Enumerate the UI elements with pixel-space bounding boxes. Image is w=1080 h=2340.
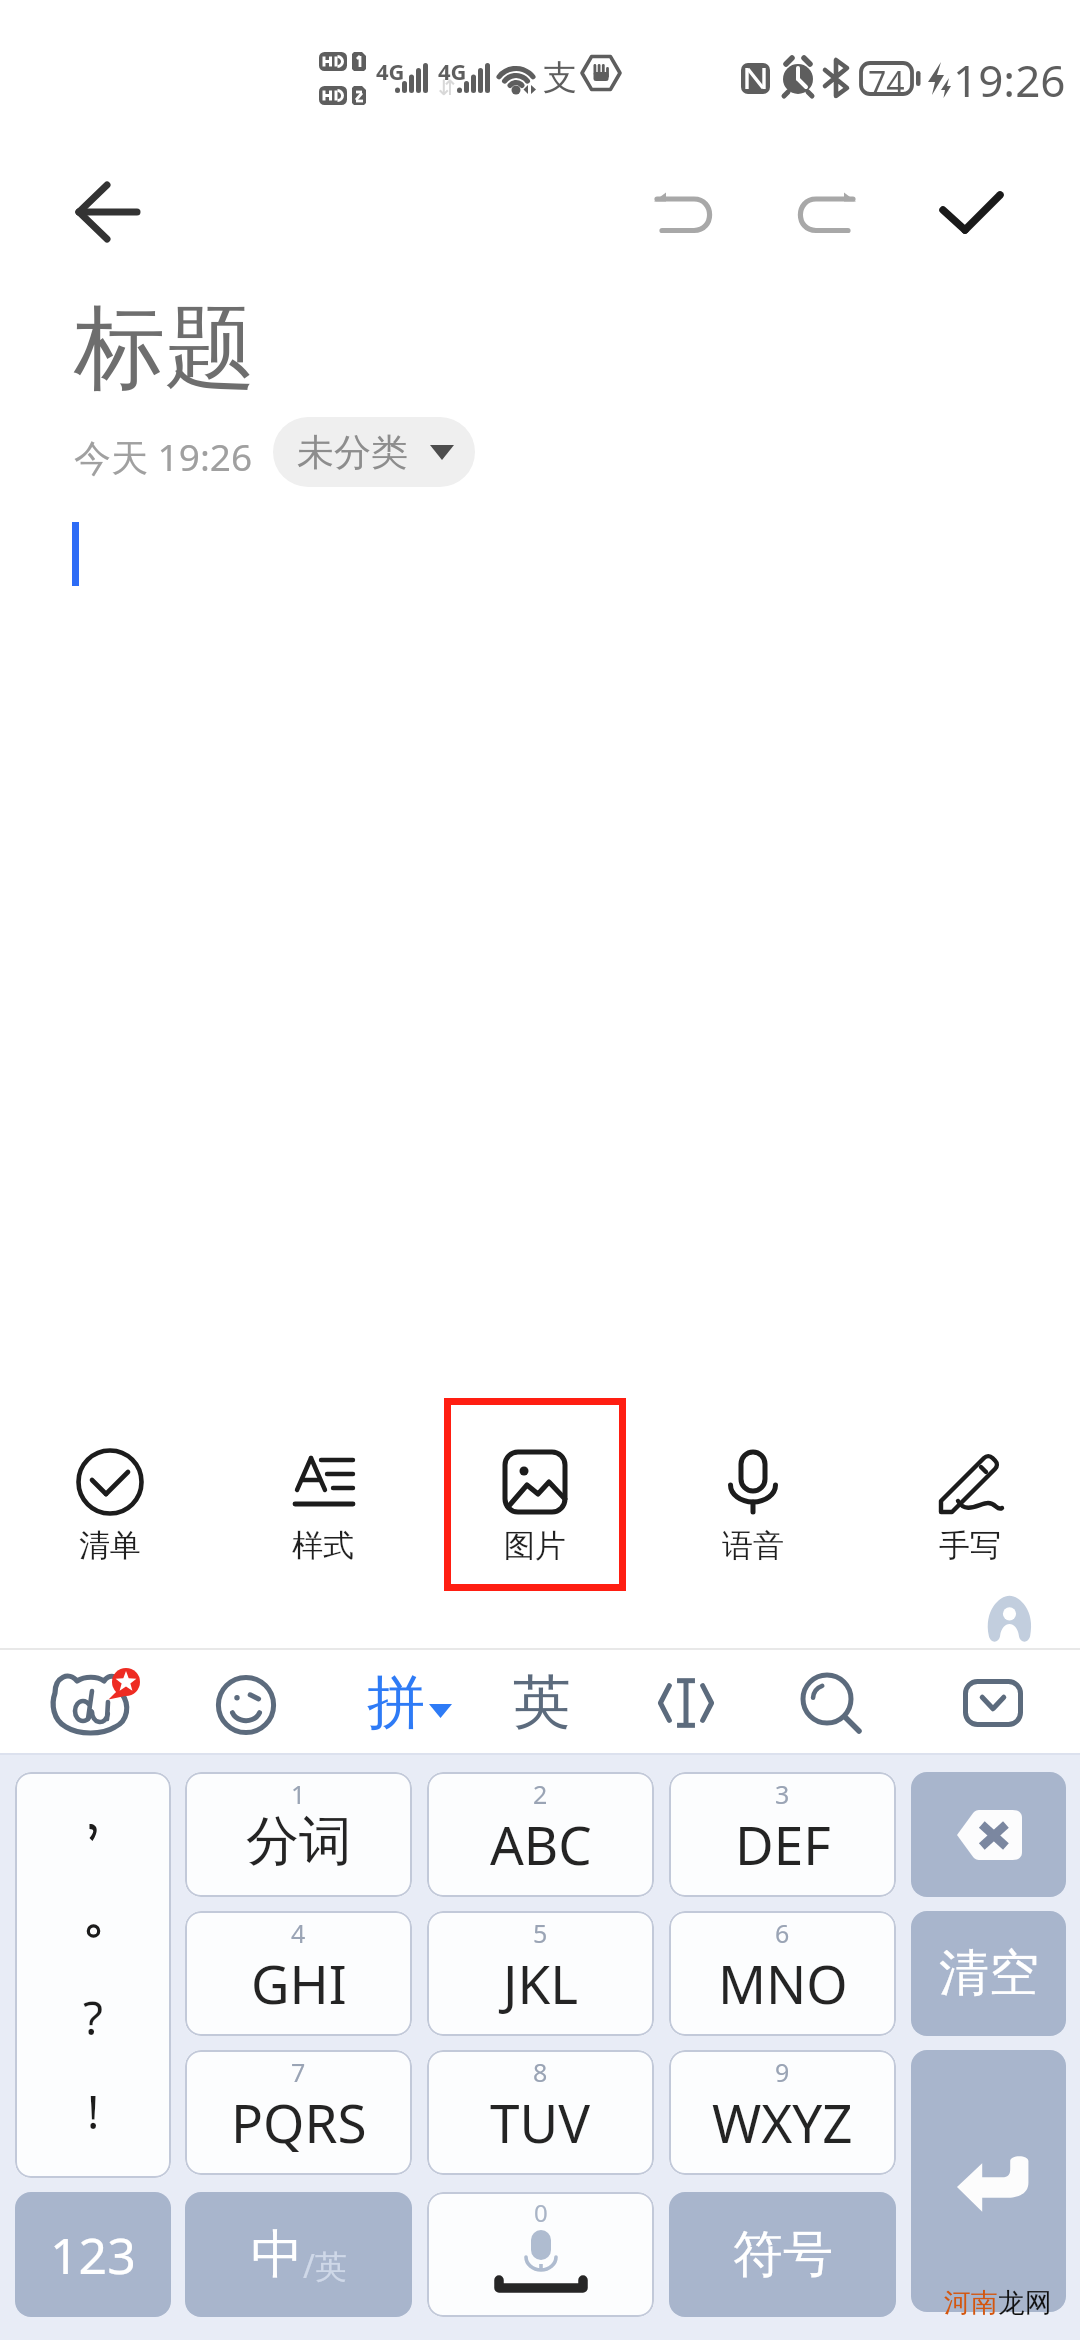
staticText: 拼 bbox=[367, 1666, 425, 1739]
staticText: 4G bbox=[438, 56, 467, 86]
button[interactable]: 2 bbox=[427, 1772, 654, 1897]
button[interactable]: 拼 bbox=[367, 1662, 452, 1742]
button[interactable]: Hide keyboard bbox=[963, 1679, 1023, 1727]
staticText: 清单 bbox=[79, 1526, 141, 1565]
button[interactable]: 6 bbox=[669, 1911, 896, 2036]
button[interactable]: Back bbox=[48, 157, 168, 267]
button[interactable]: 4 bbox=[185, 1911, 412, 2036]
button[interactable]: 7 bbox=[185, 2050, 412, 2175]
staticText: 分词 bbox=[246, 1808, 352, 1875]
button[interactable]: 中 bbox=[185, 2192, 412, 2317]
button[interactable]: 5 bbox=[427, 1911, 654, 2036]
button[interactable]: 样式 bbox=[232, 1398, 414, 1591]
staticText: 龙网 bbox=[998, 2286, 1052, 2320]
button[interactable]: 9 bbox=[669, 2050, 896, 2175]
staticText: 英 bbox=[513, 1666, 571, 1739]
staticText: ? bbox=[83, 1986, 103, 2049]
button[interactable]: Done bbox=[916, 157, 1026, 267]
button[interactable]: 符号 bbox=[669, 2192, 896, 2317]
staticText: 语音 bbox=[722, 1526, 784, 1565]
button[interactable]: 手写 bbox=[879, 1398, 1061, 1591]
button[interactable]: Assistant bbox=[986, 1598, 1033, 1642]
button[interactable]: 图片 bbox=[444, 1398, 626, 1591]
staticText: 样式 bbox=[292, 1526, 354, 1565]
staticText: 4G bbox=[376, 56, 405, 86]
staticText: 未分类 bbox=[297, 429, 408, 476]
staticText: 清空 bbox=[939, 1942, 1039, 2005]
staticText: 河南 bbox=[944, 2286, 998, 2320]
button[interactable]: Space bbox=[427, 2192, 654, 2317]
staticText: 符号 bbox=[733, 2223, 833, 2286]
staticText: 8 bbox=[533, 2055, 548, 2089]
staticText: 标题 bbox=[74, 291, 256, 406]
button[interactable]: 123 bbox=[15, 2192, 171, 2317]
staticText: 今天 19:26 bbox=[74, 431, 253, 482]
staticText: 支 bbox=[543, 56, 577, 99]
staticText: ⇵ bbox=[438, 76, 456, 100]
staticText: 3 bbox=[775, 1777, 790, 1811]
staticText: ABC bbox=[490, 1808, 592, 1880]
button[interactable]: 清单 bbox=[19, 1398, 201, 1591]
staticText: 6 bbox=[775, 1916, 790, 1950]
staticText: 123 bbox=[50, 2221, 136, 2289]
button[interactable]: Redo bbox=[764, 157, 874, 267]
button[interactable]: 英 bbox=[513, 1662, 571, 1742]
button[interactable]: 1 bbox=[185, 1772, 412, 1897]
button[interactable]: Undo bbox=[636, 157, 746, 267]
staticText: 0 bbox=[534, 2196, 548, 2229]
button[interactable]: 未分类 bbox=[273, 417, 475, 487]
staticText: 图片 bbox=[504, 1526, 566, 1565]
staticText: 7 bbox=[291, 2055, 306, 2089]
button[interactable]: 8 bbox=[427, 2050, 654, 2175]
staticText: JKL bbox=[503, 1947, 579, 2019]
button[interactable]: Backspace bbox=[911, 1772, 1066, 1897]
staticText: 中 bbox=[251, 2222, 303, 2288]
staticText: 2 bbox=[533, 1777, 548, 1811]
staticText: 74 bbox=[868, 61, 905, 105]
staticText: PQRS bbox=[231, 2086, 367, 2158]
button[interactable]: Baidu input bbox=[52, 1669, 144, 1739]
staticText: MNO bbox=[718, 1947, 848, 2019]
button[interactable]: Move cursor bbox=[654, 1672, 718, 1734]
staticText: GHI bbox=[251, 1947, 347, 2019]
staticText: 19:26 bbox=[953, 50, 1066, 110]
button[interactable]: Enter bbox=[911, 2050, 1066, 2312]
staticText: WXYZ bbox=[712, 2086, 853, 2158]
button[interactable]: Emoji bbox=[216, 1675, 276, 1735]
button[interactable]: 3 bbox=[669, 1772, 896, 1897]
staticText: 手写 bbox=[939, 1526, 1001, 1565]
button[interactable]: Search bbox=[802, 1673, 862, 1733]
staticText: /英 bbox=[303, 2244, 347, 2288]
button[interactable]: 语音 bbox=[662, 1398, 844, 1591]
staticText: 1 bbox=[291, 1777, 306, 1811]
staticText: 4 bbox=[291, 1916, 306, 1950]
staticText: 5 bbox=[533, 1916, 548, 1950]
staticText: ! bbox=[87, 2080, 100, 2143]
staticText: 9 bbox=[775, 2055, 790, 2089]
button[interactable]: 清空 bbox=[911, 1911, 1066, 2036]
staticText: DEF bbox=[735, 1808, 831, 1880]
staticText: TUV bbox=[490, 2086, 591, 2158]
button[interactable]: ? bbox=[15, 1772, 171, 2178]
